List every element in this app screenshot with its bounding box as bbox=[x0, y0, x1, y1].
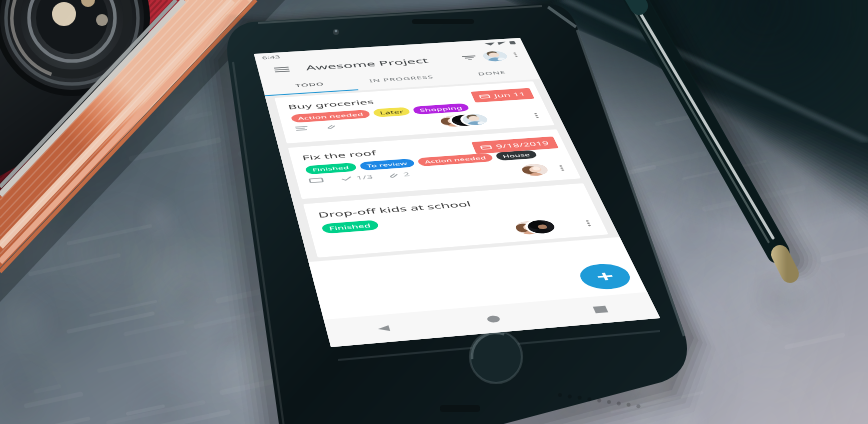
button[interactable]: Action needed bbox=[162, 327, 254, 350]
button[interactable]: More options bbox=[321, 224, 343, 246]
button[interactable]: 9/18/2019 bbox=[236, 295, 340, 328]
button[interactable]: Fix the roof bbox=[11, 276, 349, 410]
staticText: Buy groceries bbox=[25, 153, 134, 176]
button[interactable]: Attachments bbox=[61, 218, 79, 236]
staticText: Fix the roof bbox=[25, 294, 116, 317]
staticText: Shopping bbox=[188, 190, 243, 206]
staticText: 6:43 bbox=[9, 5, 33, 21]
staticText: IN PROGRESS bbox=[138, 95, 223, 111]
button[interactable]: Later bbox=[129, 186, 175, 210]
staticText: Action needed bbox=[33, 190, 116, 206]
button[interactable]: Action needed bbox=[25, 186, 124, 210]
staticText: TODO bbox=[42, 95, 79, 111]
staticText: Awesome Project bbox=[62, 39, 224, 66]
button[interactable]: Jun 11 bbox=[262, 154, 340, 187]
button[interactable]: More options bbox=[332, 41, 354, 63]
button[interactable]: Menu bbox=[12, 34, 48, 70]
button[interactable]: Filter bbox=[263, 35, 297, 69]
button[interactable]: Shopping bbox=[180, 186, 251, 210]
staticText: To review bbox=[99, 331, 149, 346]
button[interactable]: House bbox=[259, 327, 309, 350]
button[interactable]: Profile bbox=[299, 36, 331, 68]
button[interactable]: DONE bbox=[240, 80, 360, 126]
button[interactable]: TODO bbox=[0, 80, 120, 126]
staticText: DONE bbox=[282, 95, 319, 111]
button[interactable]: IN PROGRESS bbox=[120, 80, 240, 126]
button[interactable]: Description bbox=[25, 218, 43, 236]
staticText: Action needed bbox=[170, 331, 246, 346]
button[interactable]: Drop-off kids at school bbox=[11, 422, 349, 424]
staticText: Jun 11 bbox=[290, 161, 331, 180]
staticText: 9/18/2019 bbox=[264, 302, 331, 321]
button[interactable]: To review bbox=[91, 327, 157, 350]
staticText: House bbox=[267, 331, 301, 346]
button[interactable]: Buy groceries bbox=[11, 135, 349, 265]
